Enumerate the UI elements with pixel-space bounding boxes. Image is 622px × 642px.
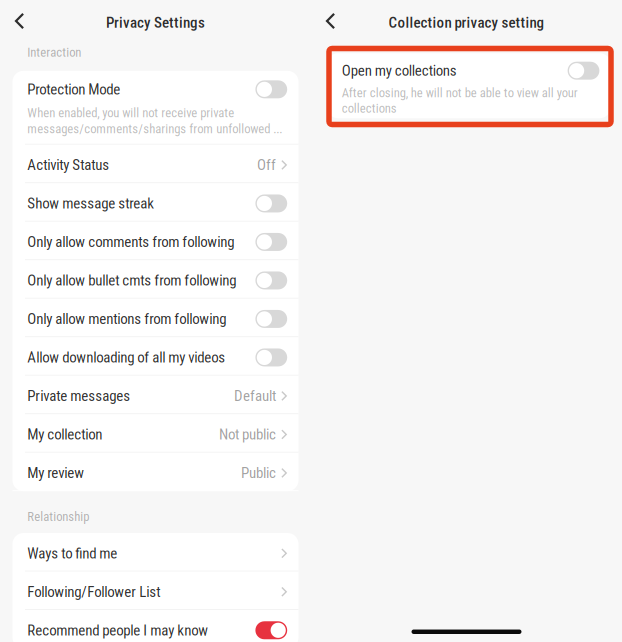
staticText: Interaction bbox=[27, 45, 81, 60]
staticText: Show message streak bbox=[27, 195, 154, 212]
button[interactable]: Only allow comments from following bbox=[12, 222, 298, 260]
button[interactable]: Private messages bbox=[12, 376, 298, 414]
staticText: Not public bbox=[219, 426, 276, 443]
staticText: Off bbox=[257, 156, 276, 174]
staticText: collections bbox=[342, 101, 397, 116]
button[interactable]: Open my collections bbox=[327, 53, 611, 118]
staticText: Following/Follower List bbox=[27, 583, 160, 600]
staticText: My review bbox=[27, 464, 84, 482]
button[interactable]: Back bbox=[311, 6, 347, 39]
button[interactable]: Recommend people I may know bbox=[12, 610, 298, 642]
staticText: After closing, he will not be able to vi… bbox=[342, 85, 578, 100]
staticText: Activity Status bbox=[27, 156, 109, 174]
button[interactable]: Activity Status bbox=[12, 145, 298, 183]
staticText: Collection privacy setting bbox=[388, 14, 544, 31]
staticText: Ways to find me bbox=[27, 544, 117, 562]
button[interactable]: Allow downloading of all my videos bbox=[12, 337, 298, 376]
staticText: Private messages bbox=[27, 387, 130, 405]
button[interactable]: Show message streak bbox=[12, 183, 298, 222]
staticText: When enabled, you will not receive priva… bbox=[27, 105, 234, 120]
staticText: Only allow bullet cmts from following bbox=[27, 272, 236, 289]
staticText: Relationship bbox=[27, 509, 89, 524]
staticText: messages/comments/sharings from unfollow… bbox=[27, 121, 282, 136]
staticText: Only allow comments from following bbox=[27, 233, 234, 251]
staticText: Privacy Settings bbox=[106, 14, 205, 31]
button[interactable]: My collection bbox=[12, 414, 298, 453]
button[interactable]: Only allow mentions from following bbox=[12, 299, 298, 337]
button[interactable]: Only allow bullet cmts from following bbox=[12, 260, 298, 299]
staticText: Public bbox=[241, 464, 276, 482]
staticText: Only allow mentions from following bbox=[27, 310, 226, 328]
staticText: Open my collections bbox=[342, 62, 457, 79]
button[interactable]: Protection Mode bbox=[12, 71, 298, 145]
button[interactable]: Following/Follower List bbox=[12, 571, 298, 610]
staticText: Recommend people I may know bbox=[27, 621, 208, 639]
button[interactable]: Back bbox=[0, 6, 36, 39]
staticText: Protection Mode bbox=[27, 81, 120, 98]
button[interactable]: Ways to find me bbox=[12, 533, 298, 571]
staticText: Allow downloading of all my videos bbox=[27, 349, 225, 366]
staticText: Default bbox=[234, 387, 276, 405]
staticText: My collection bbox=[27, 426, 102, 443]
button[interactable]: My review bbox=[12, 453, 298, 491]
